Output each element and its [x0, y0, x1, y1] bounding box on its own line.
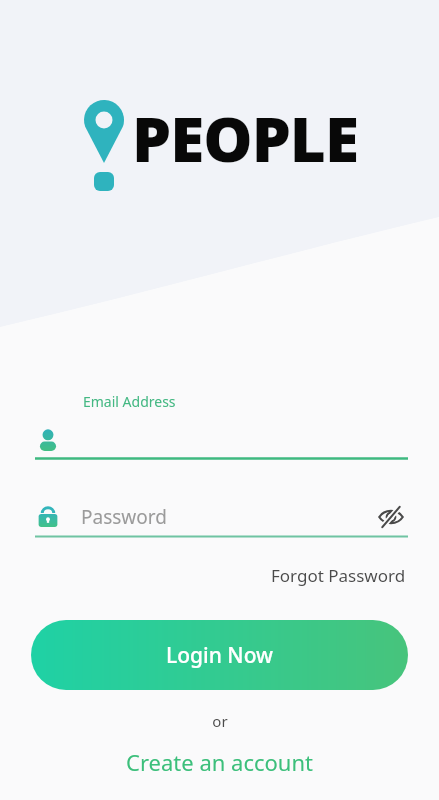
button[interactable] — [35, 423, 408, 457]
button[interactable]: Show password — [374, 500, 408, 534]
button[interactable]: Forgot Password — [269, 561, 408, 590]
staticText: Login Now — [166, 641, 274, 670]
staticText: or — [212, 711, 228, 731]
button[interactable]: Login Now — [31, 620, 408, 690]
staticText: Email Address — [83, 392, 176, 411]
button[interactable]: Create an account — [120, 744, 319, 780]
staticText: PEOPLE — [132, 96, 358, 180]
button[interactable]: Password — [35, 499, 408, 535]
staticText: Password — [81, 504, 167, 530]
